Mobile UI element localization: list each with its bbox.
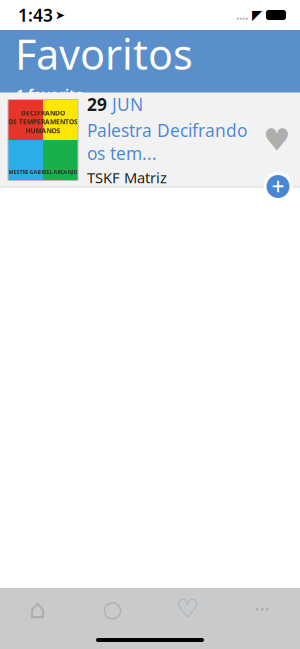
button[interactable]: Buscar [75, 592, 150, 626]
staticText: 1:43 [18, 3, 53, 26]
staticText: ♡ [176, 595, 199, 623]
staticText: MESTRE GABRIEL ARCANJO [8, 168, 77, 175]
staticText: ⌂ [29, 594, 46, 624]
staticText: HUMANOS [25, 126, 60, 135]
button[interactable]: Adicionar [261, 169, 295, 203]
staticText: .... [236, 7, 248, 23]
staticText: Palestra Decifrando os tem... [87, 119, 247, 165]
staticText: DECIFRANDO [21, 108, 65, 117]
staticText: ••• [255, 601, 270, 617]
button[interactable]: Início [0, 592, 75, 626]
staticText: TSKF Matriz [87, 168, 167, 187]
button[interactable]: Favoritos [150, 592, 225, 626]
staticText: 1 favorito [16, 84, 84, 104]
staticText: ♥ [263, 123, 290, 157]
button[interactable]: DECIFRANDO [0, 92, 300, 187]
staticText: Favoritos [15, 26, 193, 81]
staticText: + [271, 171, 284, 201]
staticText: ◤ [252, 7, 262, 22]
staticText: ➤ [55, 8, 65, 22]
staticText: JUN [112, 93, 143, 116]
staticText: 29 [87, 93, 107, 116]
staticText: OS TEMPERAMENTOS [8, 117, 78, 126]
staticText: ○ [102, 596, 122, 622]
